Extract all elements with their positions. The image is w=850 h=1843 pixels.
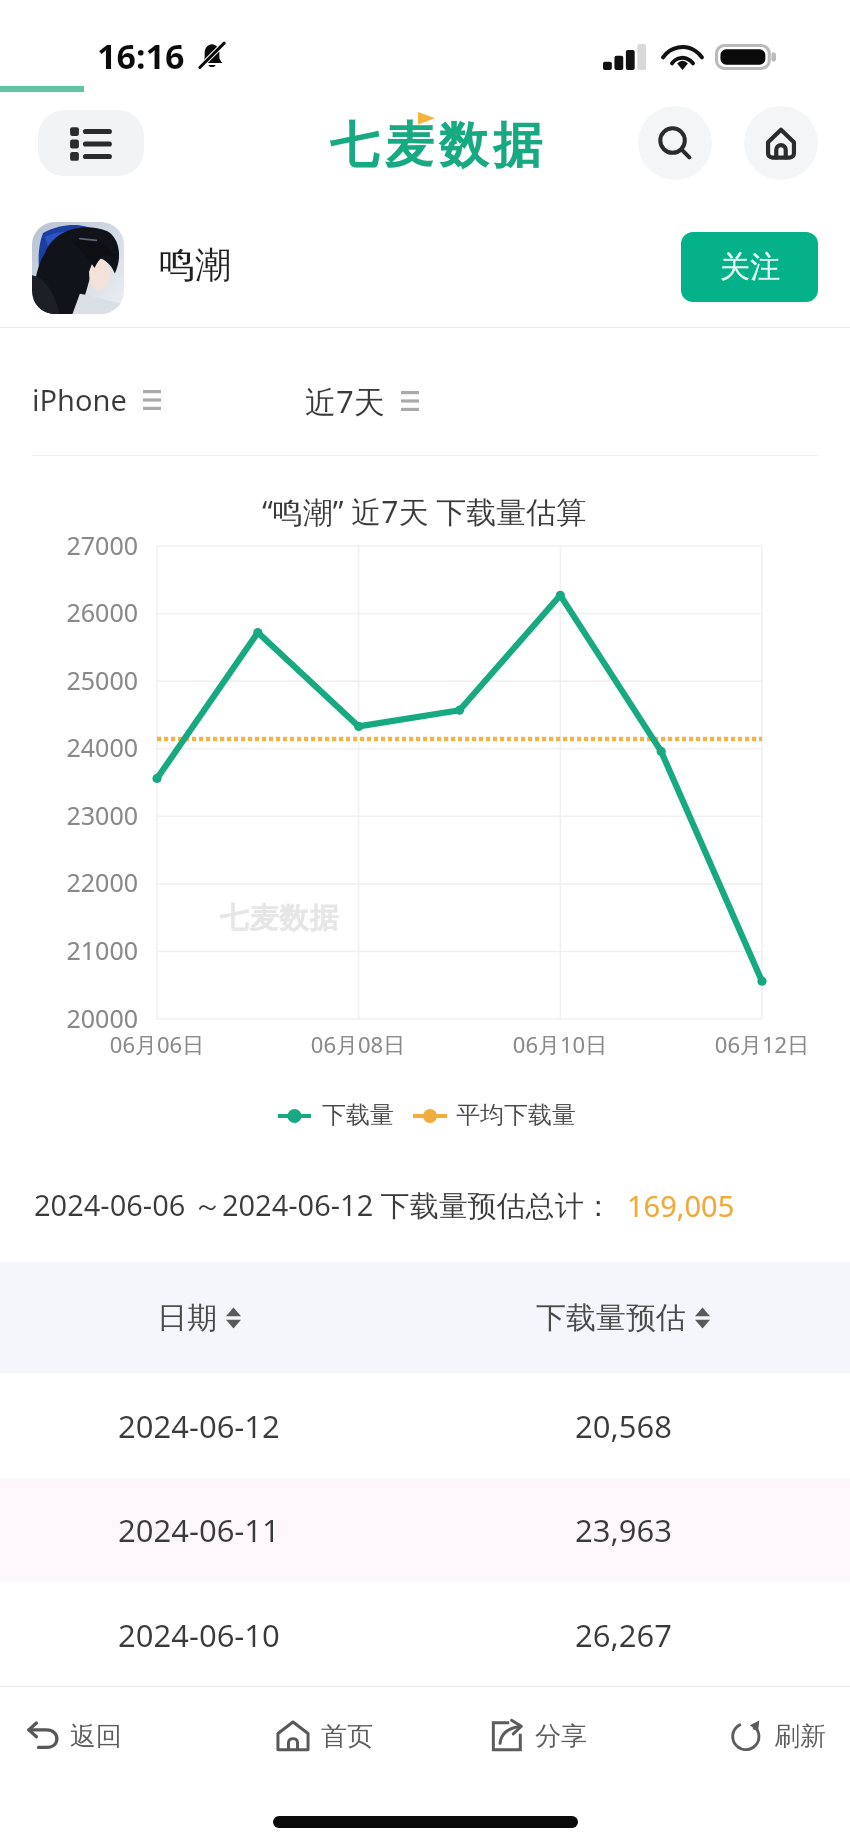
staticText: 七麦数据 [219,900,339,937]
button[interactable]: 2024-06-10 [0,1582,850,1687]
staticText: 刷新 [774,1720,826,1753]
staticText: 20000 [49,1001,138,1035]
staticText: 七麦数据 [330,115,548,177]
staticText: 日期 [157,1299,217,1337]
staticText: 鸣潮 [159,242,231,287]
button[interactable]: Search [638,106,712,180]
staticText: 24000 [49,730,138,764]
staticText: 06月06日 [85,1029,229,1059]
staticText: 23,963 [575,1509,672,1551]
button[interactable]: 日期 [110,1262,288,1373]
staticText: 06月08日 [286,1029,430,1059]
staticText: 下载量 [322,1100,394,1130]
staticText: 06月10日 [488,1029,632,1059]
button[interactable]: 关注 [681,232,818,302]
button[interactable]: 2024-06-11 [0,1478,850,1582]
button[interactable]: 刷新 [725,1700,850,1772]
staticText: iPhone [32,380,127,419]
staticText: 分享 [535,1720,587,1753]
button[interactable]: 下载量预估 [484,1262,762,1373]
staticText: 27000 [49,528,138,562]
staticText: 近7天 [305,380,385,422]
staticText: “鸣潮” 近7天 下载量估算 [262,491,587,532]
staticText: 26000 [49,595,138,629]
staticText: 20,568 [575,1405,672,1447]
button[interactable]: 分享 [486,1700,631,1772]
staticText: 2024-06-10 [118,1614,280,1656]
staticText: 23000 [49,798,138,832]
staticText: 2024-06-06 ～2024-06-12 下载量预估总计： [34,1185,613,1225]
button[interactable]: 首页 [272,1700,417,1772]
staticText: 25000 [49,663,138,697]
staticText: 2024-06-11 [118,1509,280,1551]
staticText: 26,267 [575,1614,672,1656]
staticText: 首页 [321,1720,373,1753]
staticText: 22000 [49,865,138,899]
button[interactable]: iPhone [32,380,161,419]
staticText: 关注 [720,248,780,286]
button[interactable]: 2024-06-12 [0,1373,850,1478]
staticText: 2024-06-12 [118,1405,280,1447]
button[interactable]: Menu [38,110,144,176]
staticText: 21000 [49,933,138,967]
button[interactable]: 返回 [21,1700,166,1772]
button[interactable]: 近7天 [305,380,419,422]
staticText: 返回 [70,1720,122,1753]
staticText: 169,005 [627,1186,735,1225]
staticText: 16:16 [97,33,185,79]
button[interactable]: Home [744,106,818,180]
staticText: 平均下载量 [456,1100,576,1130]
staticText: 06月12日 [690,1029,834,1059]
staticText: 下载量预估 [536,1299,686,1337]
